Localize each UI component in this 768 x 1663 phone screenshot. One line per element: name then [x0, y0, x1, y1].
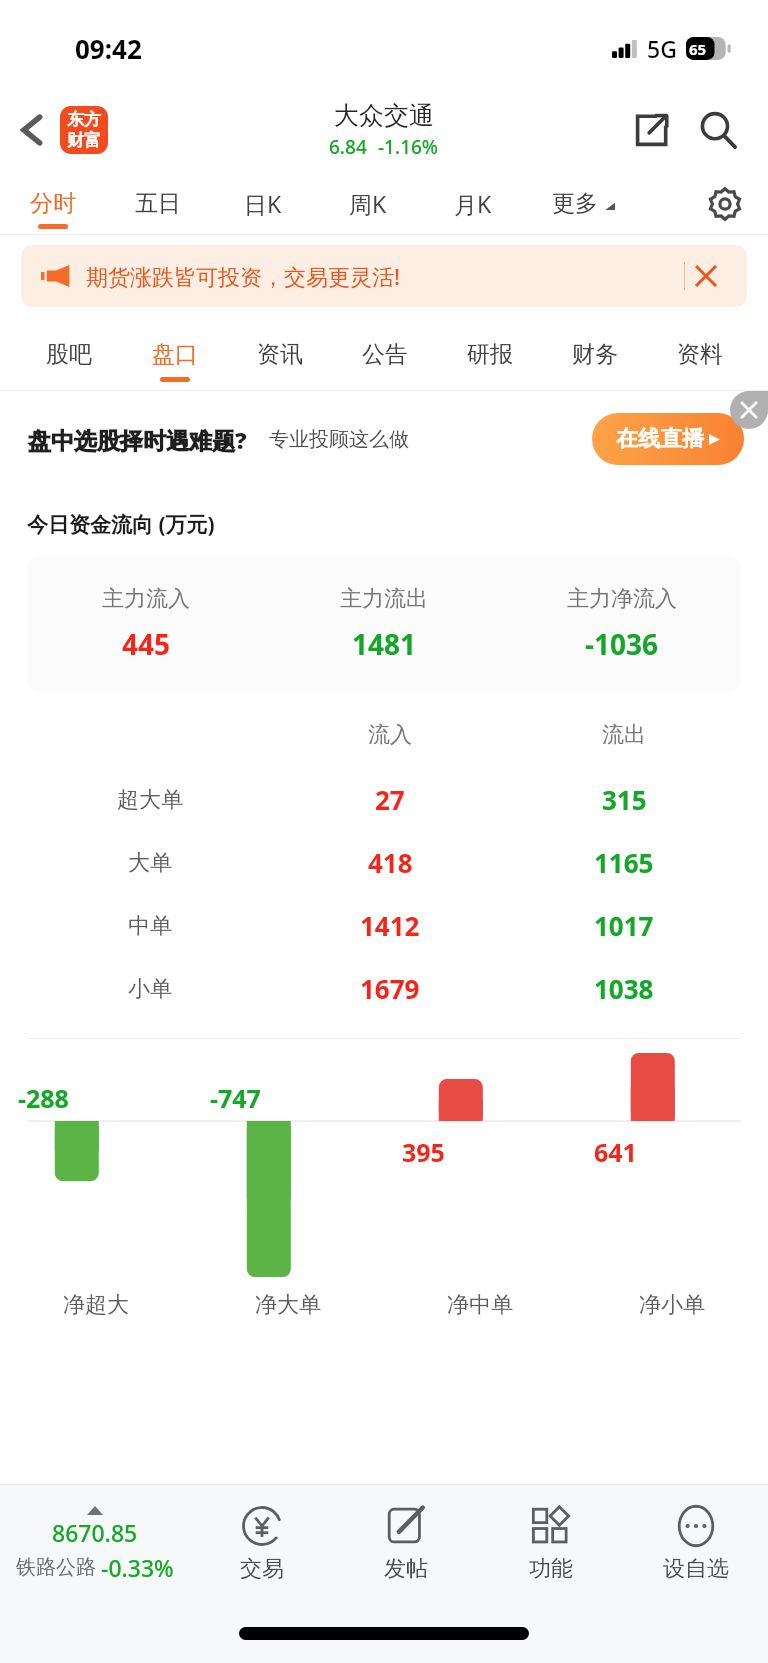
button[interactable]: 更多: [552, 172, 615, 235]
staticText: 超大单: [117, 786, 183, 814]
staticText: 流出: [602, 721, 646, 749]
staticText: 中单: [128, 912, 172, 940]
staticText: 1679: [360, 971, 420, 1006]
button[interactable]: 8670.85: [0, 1485, 190, 1603]
staticText: 1165: [594, 845, 654, 880]
button[interactable]: 分时: [27, 172, 79, 235]
button[interactable]: 交易: [190, 1485, 334, 1603]
button[interactable]: Search: [690, 102, 746, 158]
staticText: 1481: [352, 625, 417, 663]
button[interactable]: Share: [624, 102, 680, 158]
staticText: 09:42: [75, 31, 142, 66]
staticText: 大众交通: [334, 100, 434, 131]
staticText: 主力流出: [340, 585, 428, 613]
staticText: 小单: [128, 975, 172, 1003]
button[interactable]: Close ad: [730, 391, 768, 429]
staticText: 财务: [572, 340, 618, 369]
button[interactable]: 功能: [478, 1485, 623, 1603]
staticText: 在线直播: [616, 425, 704, 453]
staticText: 1017: [594, 908, 654, 943]
staticText: -1036: [585, 625, 659, 663]
button[interactable]: 资料: [647, 317, 752, 391]
button[interactable]: 资讯: [227, 317, 332, 391]
staticText: 功能: [529, 1555, 573, 1583]
staticText: 净小单: [639, 1291, 705, 1319]
button[interactable]: 月K: [447, 172, 499, 235]
button[interactable]: Settings: [696, 175, 754, 233]
button[interactable]: 盘中选股择时遇难题?: [0, 391, 768, 487]
staticText: 交易: [240, 1555, 284, 1583]
staticText: 流入: [368, 721, 412, 749]
other: Back: [20, 113, 44, 147]
button[interactable]: 公告: [332, 317, 437, 391]
button[interactable]: 大单: [27, 831, 741, 894]
button[interactable]: 超大单: [27, 768, 741, 831]
staticText: 铁路公路: [16, 1555, 96, 1580]
staticText: -288: [18, 1081, 69, 1115]
button[interactable]: 中单: [27, 894, 741, 957]
staticText: 日K: [244, 188, 282, 219]
staticText: 期货涨跌皆可投资，交易更灵活!: [86, 261, 401, 291]
button[interactable]: Back: [14, 98, 114, 162]
staticText: 主力流入: [102, 585, 190, 613]
staticText: 资讯: [257, 340, 303, 369]
staticText: 分时: [30, 189, 76, 218]
staticText: 研报: [467, 340, 513, 369]
staticText: 股吧: [46, 340, 92, 369]
staticText: -0.33%: [101, 1552, 174, 1583]
staticText: 315: [602, 782, 647, 817]
staticText: 净大单: [255, 1291, 321, 1319]
button[interactable]: 研报: [437, 317, 542, 391]
button[interactable]: 期货涨跌皆可投资，交易更灵活!: [21, 245, 747, 307]
staticText: 周K: [349, 188, 387, 219]
staticText: 净超大: [63, 1291, 129, 1319]
staticText: 6.84: [329, 134, 367, 160]
staticText: 专业投顾这么做: [269, 427, 409, 452]
staticText: 更多: [552, 189, 598, 218]
staticText: 净中单: [447, 1291, 513, 1319]
staticText: 65: [689, 39, 707, 59]
staticText: 盘中选股择时遇难题?: [28, 424, 247, 455]
staticText: 财富: [67, 130, 101, 151]
button[interactable]: 五日: [132, 172, 184, 235]
staticText: 资料: [677, 340, 723, 369]
staticText: 641: [594, 1135, 637, 1169]
staticText: 8670.85: [52, 1517, 138, 1548]
staticText: 设自选: [663, 1555, 729, 1583]
staticText: -747: [210, 1081, 261, 1115]
staticText: 395: [402, 1135, 445, 1169]
staticText: 公告: [362, 340, 408, 369]
button[interactable]: 日K: [237, 172, 289, 235]
button[interactable]: 周K: [342, 172, 394, 235]
button[interactable]: 在线直播: [592, 413, 744, 465]
staticText: 五日: [135, 189, 181, 218]
staticText: 1038: [594, 971, 654, 1006]
button[interactable]: 财务: [542, 317, 647, 391]
button[interactable]: 主力流入: [27, 556, 741, 692]
staticText: 盘口: [152, 340, 198, 369]
staticText: -1.16%: [378, 134, 439, 160]
staticText: 418: [368, 845, 413, 880]
staticText: 1412: [360, 908, 420, 943]
button[interactable]: 设自选: [623, 1485, 768, 1603]
staticText: 今日资金流向 (万元): [27, 510, 215, 539]
staticText: 月K: [454, 188, 492, 219]
staticText: 大单: [128, 849, 172, 877]
button[interactable]: 发帖: [334, 1485, 478, 1603]
button[interactable]: Close notice: [685, 255, 727, 297]
staticText: 5G: [647, 33, 677, 64]
button[interactable]: 盘口: [122, 317, 227, 391]
staticText: 445: [122, 625, 171, 663]
staticText: 27: [375, 782, 405, 817]
button[interactable]: 股吧: [16, 317, 122, 391]
staticText: 发帖: [384, 1555, 428, 1583]
staticText: 主力净流入: [567, 585, 677, 613]
button[interactable]: 小单: [27, 957, 741, 1020]
staticText: 东方: [67, 109, 101, 130]
